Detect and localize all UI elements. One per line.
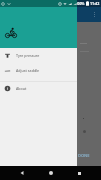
- button[interactable]: Tyre pressure: [0, 48, 77, 62]
- button[interactable]: Recent apps: [72, 166, 86, 180]
- button[interactable]: More options: [94, 12, 95, 17]
- button[interactable]: Adjust saddle: [0, 63, 77, 77]
- staticText: About: [16, 86, 27, 91]
- staticText: 11:42: [90, 1, 100, 6]
- staticText: Tyre pressure: [16, 53, 40, 58]
- button[interactable]: DONE: [78, 153, 90, 158]
- button[interactable]: About: [0, 81, 77, 95]
- button[interactable]: Home: [44, 166, 58, 180]
- staticText: 100%: [76, 2, 85, 6]
- staticText: Adjust saddle: [16, 68, 40, 73]
- button[interactable]: Back: [15, 166, 29, 180]
